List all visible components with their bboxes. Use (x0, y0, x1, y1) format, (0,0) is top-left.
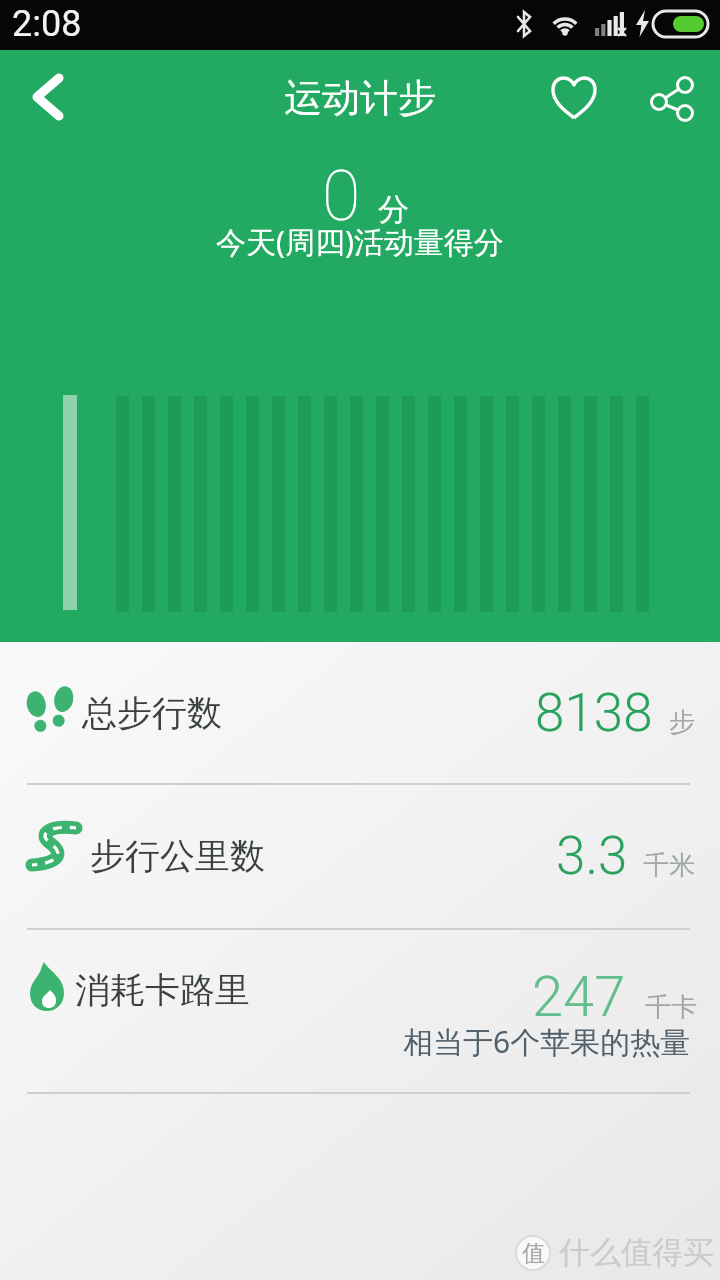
staticText: 247 (532, 964, 626, 1030)
button[interactable]: 总步行数 (0, 642, 720, 784)
staticText: 值 (522, 1239, 545, 1268)
staticText: 什么值得买 (559, 1233, 714, 1272)
staticText: 分 (378, 190, 409, 229)
staticText: 3.3 (556, 825, 628, 887)
staticText: 步 (669, 706, 695, 739)
button[interactable]: 消耗卡路里 (0, 929, 720, 1092)
staticText: 今天(周四)活动量得分 (0, 221, 720, 262)
button[interactable] (638, 68, 702, 124)
staticText: 相当于6个苹果的热量 (403, 1021, 691, 1062)
staticText: 运动计步 (0, 74, 720, 122)
staticText: 步行公里数 (90, 834, 265, 878)
staticText: 总步行数 (82, 691, 222, 735)
staticText: 消耗卡路里 (75, 968, 250, 1012)
staticText: 8138 (535, 682, 653, 744)
button[interactable]: 步行公里数 (0, 785, 720, 927)
staticText: 2:08 (12, 3, 82, 45)
button[interactable]: 值 (515, 1233, 714, 1272)
staticText: 千米 (643, 849, 695, 882)
button[interactable] (546, 71, 602, 123)
button[interactable] (20, 64, 76, 120)
staticText: 千卡 (645, 991, 697, 1024)
staticText: 0 (322, 155, 361, 237)
